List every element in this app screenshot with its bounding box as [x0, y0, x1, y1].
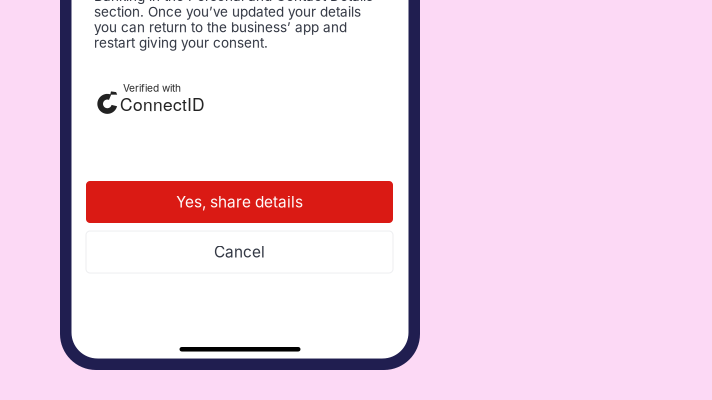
button[interactable]: Cancel: [86, 231, 393, 273]
staticText: Yes, share details: [176, 193, 303, 211]
staticText: Cancel: [214, 243, 265, 261]
staticText: section. Once you’ve updated your detail…: [94, 4, 361, 20]
staticText: Verified with: [123, 82, 181, 94]
staticText: restart giving your consent.: [94, 35, 268, 51]
staticText: ConnectID: [120, 91, 205, 116]
staticText: you can return to the business’ app and: [94, 19, 347, 35]
staticText: Banking in the Personal and Contact Deta…: [94, 0, 373, 4]
button[interactable]: Yes, share details: [86, 181, 393, 223]
